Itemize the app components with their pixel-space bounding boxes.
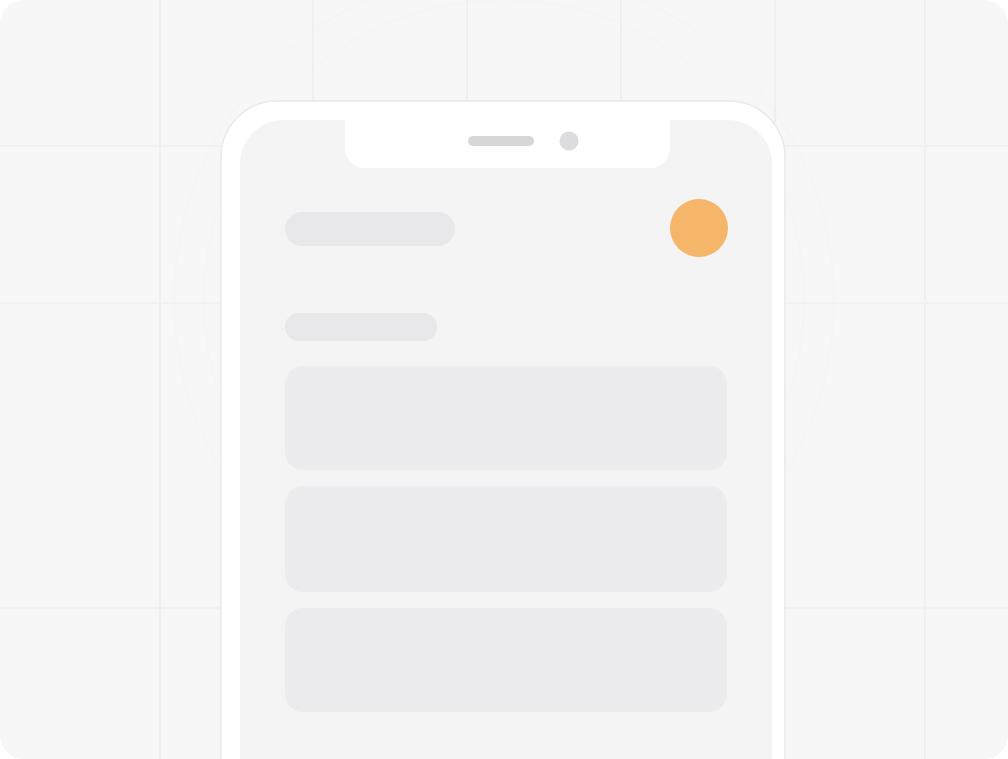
button[interactable]: Add <box>670 199 728 257</box>
